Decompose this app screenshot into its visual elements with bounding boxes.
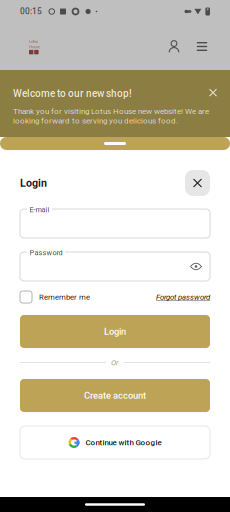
staticText: Thank you for visiting Lotus House new w… bbox=[13, 107, 209, 125]
staticText: Remember me bbox=[39, 292, 90, 302]
button[interactable]: Login bbox=[20, 315, 210, 348]
button[interactable]: Account bbox=[166, 38, 182, 54]
staticText: Create account bbox=[84, 390, 146, 401]
button[interactable]: Continue with Google bbox=[20, 426, 210, 459]
staticText: Password bbox=[29, 248, 62, 257]
staticText: 00:15 bbox=[20, 7, 42, 16]
button[interactable]: Menu bbox=[194, 38, 210, 54]
button[interactable]: Show password bbox=[187, 257, 205, 275]
staticText: Welcome to our new shop! bbox=[13, 88, 132, 99]
button[interactable]: Remember me bbox=[20, 290, 90, 304]
staticText: House bbox=[29, 44, 40, 49]
button[interactable]: Lotus House home bbox=[29, 40, 41, 53]
staticText: E-mail bbox=[29, 205, 49, 214]
staticText: Login bbox=[20, 177, 47, 189]
staticText: Continue with Google bbox=[85, 438, 161, 447]
button[interactable]: Forgot password bbox=[156, 290, 210, 304]
staticText: Lotus bbox=[29, 39, 38, 44]
staticText: Forgot password bbox=[156, 292, 210, 302]
staticText: Login bbox=[104, 326, 126, 337]
button[interactable]: Close bbox=[185, 170, 210, 196]
button[interactable]: Create account bbox=[20, 379, 210, 412]
button[interactable]: Dismiss announcement bbox=[205, 85, 221, 101]
staticText: Or bbox=[111, 358, 119, 367]
